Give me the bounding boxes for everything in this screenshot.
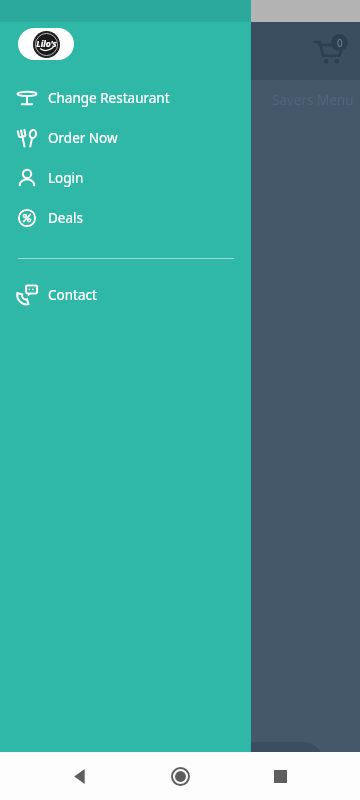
button[interactable]: Recent apps	[260, 756, 300, 796]
button[interactable]: Restaurant logo	[18, 28, 74, 60]
button[interactable]: Home	[160, 756, 200, 796]
staticText: Login	[48, 169, 84, 187]
button[interactable]: Change Restaurant	[0, 78, 251, 118]
staticText: Lilo's	[36, 38, 57, 50]
button[interactable]	[18, 742, 324, 784]
button[interactable]: Login	[0, 158, 251, 198]
button[interactable]: Savers Menu	[266, 87, 360, 113]
staticText: 0	[337, 36, 343, 50]
button[interactable]: Cart	[306, 29, 350, 73]
staticText: Order Now	[48, 129, 118, 147]
staticText: Contact	[48, 286, 97, 304]
button[interactable]: Deals	[0, 198, 251, 238]
staticText: Savers Menu	[272, 91, 354, 109]
button[interactable]: Back	[60, 756, 100, 796]
button[interactable]: Contact	[0, 275, 251, 315]
staticText: Change Restaurant	[48, 89, 170, 107]
staticText: Deals	[48, 209, 83, 227]
button[interactable]: Order Now	[0, 118, 251, 158]
